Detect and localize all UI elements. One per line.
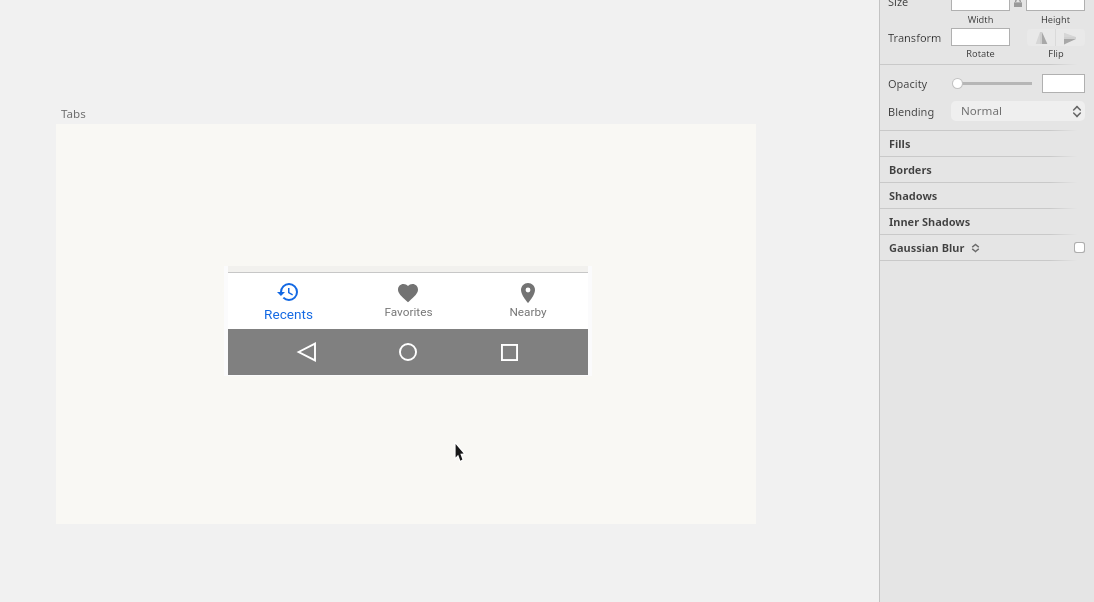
staticText: Gaussian Blur [889,240,965,255]
staticText: Size [888,0,909,9]
button[interactable]: Enable Gaussian Blur [1075,243,1084,252]
staticText: Width [951,13,1010,26]
button[interactable]: Inner Shadows [880,209,1094,234]
button[interactable]: Fills [880,131,1094,156]
button[interactable]: Nearby [468,273,588,329]
staticText: Tabs [61,106,86,122]
button[interactable]: Home [388,332,428,372]
button[interactable]: Favorites [348,273,468,329]
button[interactable]: Shadows [880,183,1094,208]
button[interactable]: Normal [951,101,1085,121]
button[interactable]: Recents [228,273,348,329]
staticText: Fills [889,136,911,151]
staticText: Rotate [951,47,1010,60]
staticText: Height [1026,13,1085,26]
staticText: Inner Shadows [889,214,971,229]
staticText: Recents [264,306,313,322]
staticText: Shadows [889,188,938,203]
button[interactable]: Borders [880,157,1094,182]
staticText: Normal [961,103,1002,119]
button[interactable]: Back [287,332,327,372]
staticText: Blending [888,104,935,119]
button[interactable]: Gaussian Blur [880,235,1094,260]
button[interactable]: Flip [1027,29,1085,46]
staticText: Favorites [384,305,433,319]
staticText: Nearby [509,305,547,319]
button[interactable]: Recent apps [489,332,529,372]
staticText: Transform [888,30,942,45]
button[interactable]: Opacity slider [951,76,1033,90]
staticText: Borders [889,162,932,177]
staticText: Opacity [888,76,928,91]
staticText: Flip [1027,47,1085,60]
